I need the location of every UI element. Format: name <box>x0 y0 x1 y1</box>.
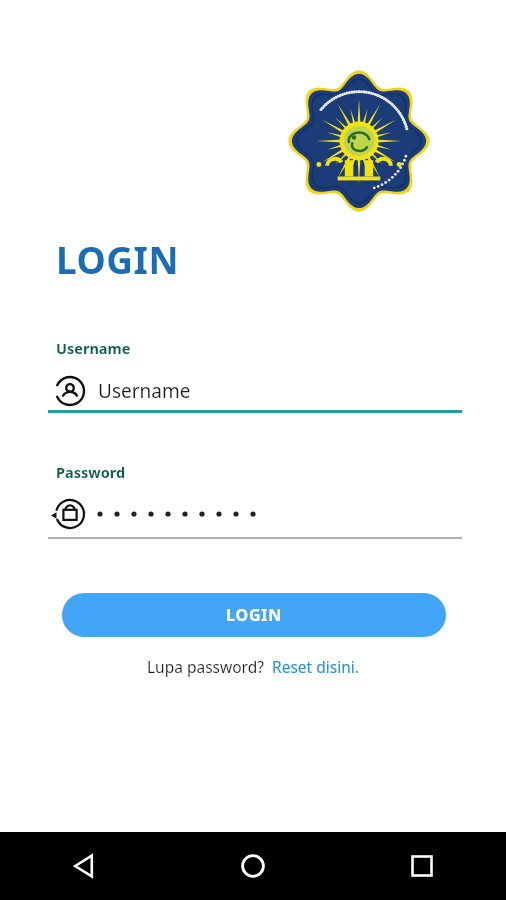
staticText: LOGIN <box>226 604 283 626</box>
button[interactable]: Back <box>0 832 168 900</box>
staticText: Password <box>56 462 126 482</box>
button[interactable]: LOGIN <box>62 593 446 637</box>
staticText: Reset disini. <box>272 656 359 677</box>
button[interactable]: Username <box>48 368 462 414</box>
staticText: Username <box>98 378 191 404</box>
button[interactable] <box>48 492 462 536</box>
staticText: Username <box>56 338 131 358</box>
button[interactable]: Recent apps <box>337 832 506 900</box>
staticText: LOGIN <box>56 234 179 284</box>
button[interactable]: Reset disini. <box>272 656 359 677</box>
button[interactable]: Home <box>168 832 337 900</box>
staticText: Lupa password? <box>147 656 264 677</box>
